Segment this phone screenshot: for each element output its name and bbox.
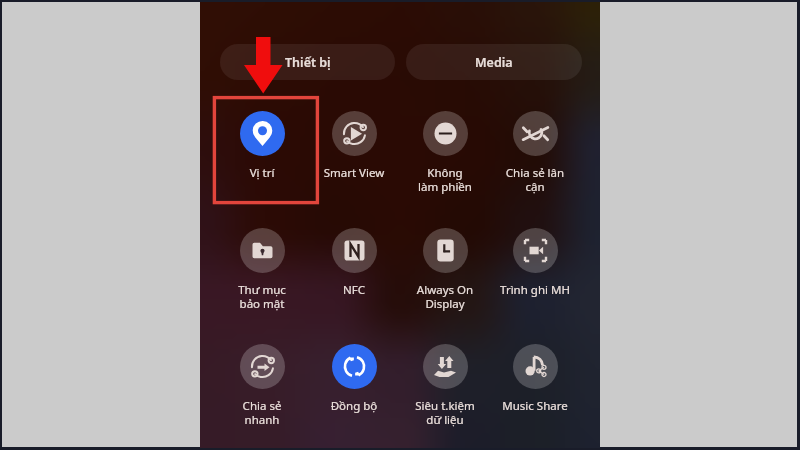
button[interactable]: Thư mục bảo mật bbox=[217, 228, 307, 300]
button[interactable]: Trình ghi MH bbox=[490, 228, 580, 300]
button[interactable]: Vị trí bbox=[217, 111, 307, 183]
staticText: Trình ghi MH bbox=[490, 282, 580, 298]
staticText: NFC bbox=[309, 282, 399, 298]
staticText: Smart View bbox=[309, 165, 399, 181]
button[interactable]: Media bbox=[406, 44, 582, 80]
staticText: Thư mục bảo mật bbox=[217, 282, 307, 311]
button[interactable]: NFC bbox=[309, 228, 399, 300]
staticText: Vị trí bbox=[217, 165, 307, 181]
button[interactable]: Chia sẻ lân cận bbox=[490, 111, 580, 183]
button[interactable]: Đồng bộ bbox=[309, 344, 399, 416]
staticText: Media bbox=[475, 54, 513, 71]
button[interactable]: Chia sẻ nhanh bbox=[217, 344, 307, 416]
button[interactable]: Không làm phiền bbox=[400, 111, 490, 183]
button[interactable]: Smart View bbox=[309, 111, 399, 183]
staticText: Always On Display bbox=[400, 282, 490, 311]
staticText: Siêu t.kiệm dữ liệu bbox=[400, 398, 490, 427]
staticText: Music Share bbox=[490, 398, 580, 414]
staticText: Không làm phiền bbox=[400, 165, 490, 194]
button[interactable]: Always On Display bbox=[400, 228, 490, 300]
staticText: Đồng bộ bbox=[309, 398, 399, 414]
button[interactable]: Thiết bị bbox=[220, 44, 395, 80]
button[interactable]: Music Share bbox=[490, 344, 580, 416]
staticText: Chia sẻ nhanh bbox=[217, 398, 307, 427]
staticText: Thiết bị bbox=[285, 54, 331, 71]
staticText: Chia sẻ lân cận bbox=[490, 165, 580, 194]
button[interactable]: Siêu t.kiệm dữ liệu bbox=[400, 344, 490, 416]
